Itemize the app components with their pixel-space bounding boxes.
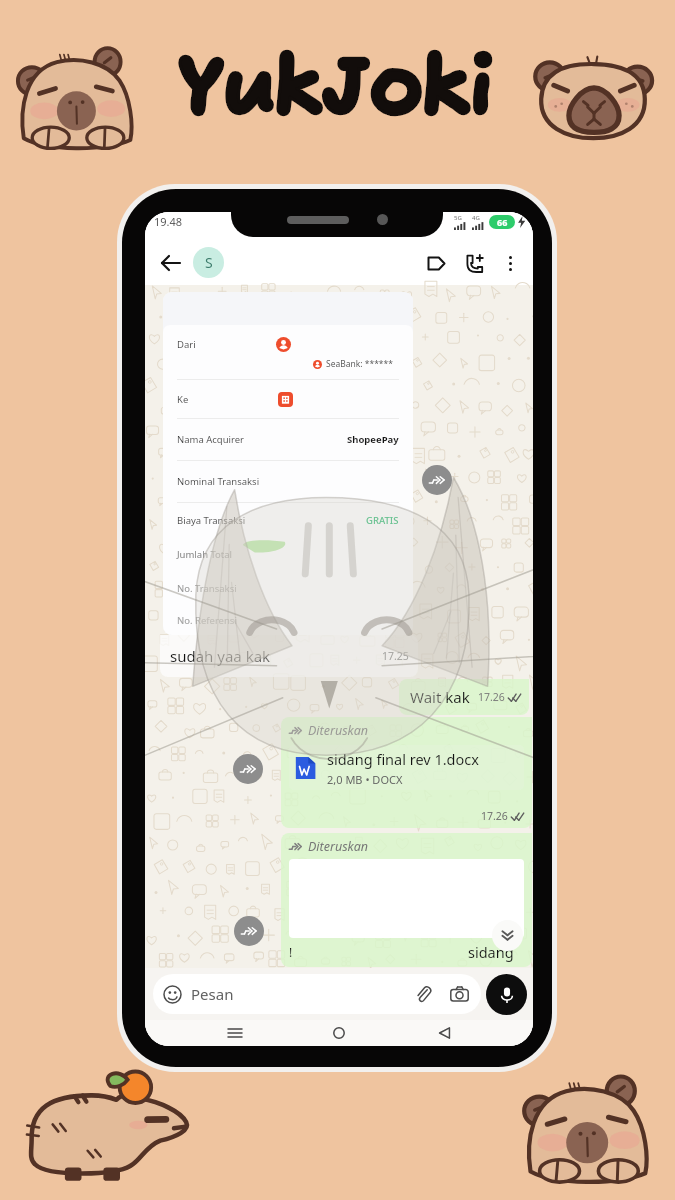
staticText: 17.25 <box>382 649 409 663</box>
button[interactable]: Back <box>429 1020 459 1046</box>
staticText: sidang <box>468 942 514 962</box>
staticText: Diteruskan <box>308 722 369 739</box>
staticText: Wait kak <box>410 687 470 707</box>
staticText: 19.48 <box>154 214 183 229</box>
staticText: Nominal Transaksi <box>177 475 260 488</box>
staticText: 2,0 MB • DOCX <box>327 772 403 787</box>
staticText: Pesan <box>191 984 234 1004</box>
button[interactable]: Pesan <box>163 974 469 1014</box>
staticText: Ke <box>177 393 189 406</box>
button[interactable]: Back <box>156 249 184 277</box>
button[interactable]: Home <box>324 1020 354 1046</box>
staticText: 17.26 <box>478 690 505 704</box>
staticText: YukJoki <box>178 43 491 140</box>
button[interactable]: sudah yaa kak <box>170 635 409 677</box>
button[interactable]: S <box>193 247 224 278</box>
button[interactable]: Diteruskan <box>289 838 524 962</box>
staticText: SeaBank: ****** <box>326 358 393 370</box>
staticText: GRATIS <box>366 514 399 527</box>
staticText: ShopeePay <box>347 433 399 446</box>
staticText: 17.26 <box>481 809 508 823</box>
staticText: sudah yaa kak <box>170 646 271 666</box>
button[interactable]: Forward <box>233 754 263 784</box>
staticText: Biaya Transaksi <box>177 514 246 527</box>
button[interactable]: Scroll to bottom <box>492 920 523 951</box>
staticText: Diteruskan <box>308 838 369 855</box>
button[interactable]: Diteruskan <box>289 722 524 823</box>
staticText: sidang final rev 1.docx <box>327 749 479 769</box>
staticText: Nama Acquirer <box>177 433 245 446</box>
button[interactable]: Wait kak <box>410 679 521 715</box>
button[interactable]: Record voice message <box>486 974 527 1015</box>
staticText: 5G <box>454 214 462 222</box>
staticText: Dari <box>177 338 196 351</box>
staticText: Jumlah Total <box>177 548 233 561</box>
button[interactable]: Recents <box>220 1020 250 1046</box>
button[interactable]: Forward <box>234 916 264 946</box>
staticText: S <box>205 253 213 272</box>
staticText: 66 <box>497 216 508 228</box>
button[interactable]: More options <box>497 250 523 276</box>
staticText: No. Transaksi <box>177 582 237 595</box>
staticText: YukJoki <box>178 43 491 140</box>
staticText: ! <box>289 944 293 960</box>
staticText: No. Referensi <box>177 614 237 627</box>
staticText: 4G <box>472 214 480 222</box>
button[interactable]: Dari <box>163 292 413 635</box>
button[interactable]: Add call <box>460 248 490 278</box>
button[interactable]: Label <box>421 248 451 278</box>
button[interactable]: Forward <box>422 465 452 495</box>
